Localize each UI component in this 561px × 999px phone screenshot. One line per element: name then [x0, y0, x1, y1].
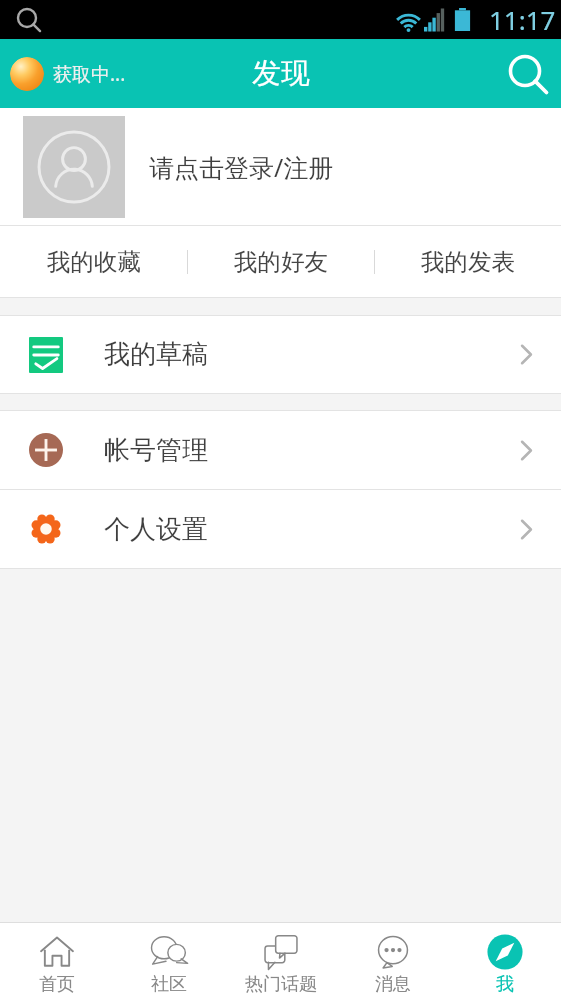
staticText: 首页: [39, 973, 75, 996]
button[interactable]: Search: [0, 0, 56, 39]
button[interactable]: Search: [493, 39, 561, 108]
button[interactable]: 消息: [337, 923, 449, 999]
button[interactable]: 我: [449, 923, 561, 999]
staticText: 我的好友: [234, 247, 328, 277]
staticText: 我的收藏: [47, 247, 141, 277]
staticText: 热门话题: [245, 973, 317, 996]
button[interactable]: 我的草稿: [0, 316, 561, 393]
button[interactable]: 我的收藏: [0, 226, 187, 297]
button[interactable]: 获取中...: [10, 39, 126, 108]
staticText: 我的草稿: [104, 338, 208, 371]
staticText: 帐号管理: [104, 434, 208, 467]
button[interactable]: 帐号管理: [0, 411, 561, 489]
staticText: 请点击登录/注册: [149, 150, 334, 184]
button[interactable]: 请点击登录/注册: [0, 108, 561, 225]
staticText: 消息: [375, 973, 411, 996]
staticText: 个人设置: [104, 513, 208, 546]
button[interactable]: 社区: [113, 923, 225, 999]
staticText: 我: [496, 973, 514, 996]
staticText: 社区: [151, 973, 187, 996]
staticText: 获取中...: [53, 61, 126, 87]
button[interactable]: 首页: [0, 923, 113, 999]
button[interactable]: 我的好友: [188, 226, 374, 297]
button[interactable]: 热门话题: [225, 923, 337, 999]
staticText: 发现: [252, 55, 310, 92]
button[interactable]: 个人设置: [0, 490, 561, 568]
staticText: 我的发表: [421, 247, 515, 277]
button[interactable]: 我的发表: [375, 226, 561, 297]
staticText: 11:17: [489, 2, 556, 37]
